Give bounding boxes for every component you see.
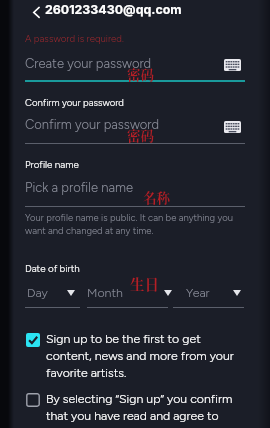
button[interactable]: Sign up to be the first to get content, … xyxy=(26,331,246,380)
staticText: Day xyxy=(27,285,48,300)
button[interactable]: Show keyboard xyxy=(224,121,241,133)
staticText: Sign up to be the first to get content, … xyxy=(46,331,244,380)
staticText: 名称 xyxy=(143,187,170,206)
button[interactable]: Select year xyxy=(233,290,241,296)
staticText: 2601233430@qq.com xyxy=(45,2,182,17)
button[interactable]: Day xyxy=(25,285,80,307)
button[interactable]: Month xyxy=(85,285,168,307)
staticText: Profile name xyxy=(25,159,79,171)
staticText: Create your password xyxy=(25,56,152,72)
staticText: 密码 xyxy=(127,125,154,144)
button[interactable]: Select month xyxy=(164,290,172,296)
staticText: Year xyxy=(186,285,210,300)
staticText: Month xyxy=(87,285,123,300)
staticText: 密码 xyxy=(127,64,154,83)
button[interactable]: Year xyxy=(173,285,244,307)
staticText: Confirm your password xyxy=(25,117,159,133)
staticText: Confirm your password xyxy=(25,97,124,109)
button[interactable]: Select day xyxy=(67,290,75,296)
button[interactable]: Back xyxy=(25,1,47,23)
staticText: A password is required. xyxy=(25,33,124,45)
staticText: Your profile name is public. It can be a… xyxy=(25,212,237,237)
staticText: By selecting “Sign up” you confirm that … xyxy=(46,391,244,423)
staticText: Pick a profile name xyxy=(25,180,133,196)
button[interactable]: Show keyboard xyxy=(224,59,241,71)
button[interactable]: By selecting “Sign up” you confirm that … xyxy=(26,391,246,423)
staticText: 生日 xyxy=(130,273,159,294)
staticText: Date of birth xyxy=(25,263,80,275)
